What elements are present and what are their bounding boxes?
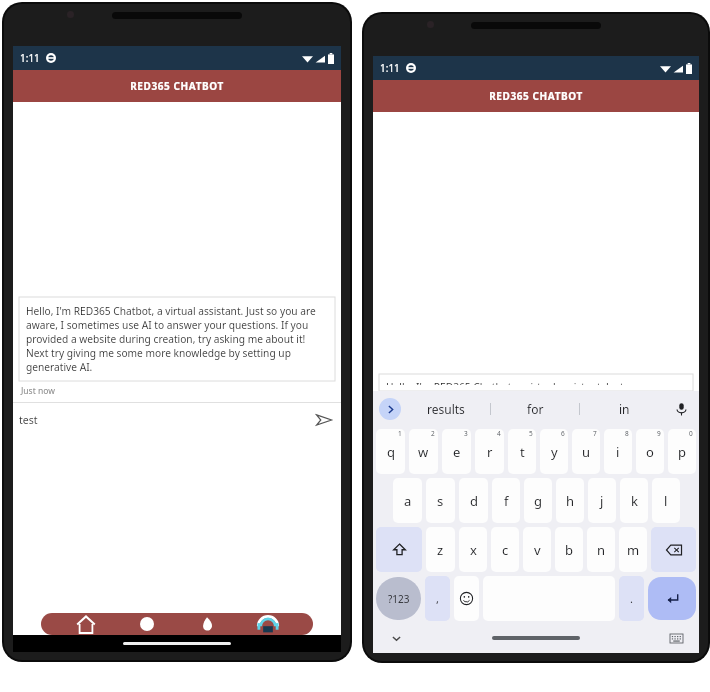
button[interactable]: Change keyboard [667,629,685,647]
button[interactable]: g [524,478,552,523]
staticText: l [664,492,668,510]
staticText: 0 [689,429,693,438]
staticText: o [646,443,654,461]
button[interactable]: n [587,527,615,572]
staticText: Just now [21,385,55,397]
staticText: c [502,541,509,559]
button[interactable]: e [442,429,471,474]
button[interactable]: v [523,527,551,572]
button[interactable]: q [376,429,405,474]
staticText: f [504,492,509,510]
button[interactable]: Hide keyboard [387,629,405,647]
button[interactable]: h [556,478,584,523]
staticText: w [418,443,429,461]
button[interactable]: results [401,391,491,427]
button[interactable]: Emoji [454,576,479,621]
staticText: 9 [657,429,661,438]
staticText: in [619,401,630,417]
staticText: z [437,541,444,559]
button[interactable]: Send [313,409,335,431]
staticText: d [470,492,478,510]
staticText: results [427,401,465,417]
staticText: b [565,541,573,559]
staticText: for [527,401,544,417]
button[interactable]: s [426,478,455,523]
staticText: 7 [593,429,597,438]
staticText: a [404,492,412,510]
staticText: , [436,591,439,606]
staticText: r [487,443,493,461]
button[interactable]: y [540,429,568,474]
button[interactable]: Hello, I'm RED365 Chatbot, a virtual ass… [19,297,335,402]
button[interactable]: Hello, I'm RED365 Chatbot, a virtual ass… [379,374,693,391]
staticText: n [597,541,606,559]
button[interactable]: , [425,576,450,621]
staticText: 1:11 [20,51,40,65]
staticText: m [627,541,640,559]
button[interactable]: j [588,478,616,523]
button[interactable]: Profile [132,613,162,635]
staticText: 5 [529,429,533,438]
button[interactable]: p [668,429,696,474]
button[interactable]: c [491,527,519,572]
button[interactable]: u [572,429,600,474]
staticText: . [630,591,633,606]
button[interactable]: w [409,429,438,474]
button[interactable]: x [459,527,487,572]
button[interactable]: Chatbot [253,613,283,635]
staticText: s [437,492,444,510]
button[interactable]: test [19,403,335,437]
staticText: v [534,541,541,559]
button[interactable]: d [459,478,488,523]
staticText: RED365 CHATBOT [130,79,224,93]
staticText: h [566,492,575,510]
button[interactable]: . [619,576,644,621]
button[interactable]: Notifications [192,613,222,635]
staticText: p [678,443,686,461]
staticText: x [470,541,477,559]
staticText: ?123 [388,592,410,606]
button[interactable]: t [508,429,536,474]
staticText: u [582,443,591,461]
button[interactable]: in [580,391,669,427]
staticText: j [600,492,604,510]
button[interactable]: Enter [648,577,696,620]
button[interactable]: i [604,429,632,474]
staticText: 1:11 [380,61,400,75]
button[interactable]: ?123 [376,577,421,620]
button[interactable]: r [475,429,504,474]
staticText: e [453,443,461,461]
staticText: q [387,443,395,461]
button[interactable]: for [491,391,580,427]
staticText: t [520,443,525,461]
button[interactable]: Home [71,613,101,635]
button[interactable]: m [619,527,647,572]
staticText: y [551,443,558,461]
button[interactable]: z [426,527,455,572]
staticText: g [534,492,542,510]
staticText: Hello, I'm RED365 Chatbot, a virtual ass… [386,380,686,385]
staticText: k [631,492,638,510]
button[interactable]: f [492,478,520,523]
staticText: 4 [497,429,501,438]
button[interactable]: l [652,478,680,523]
staticText: i [616,443,620,461]
staticText: 6 [561,429,565,438]
staticText: 3 [464,429,468,438]
button[interactable]: More suggestions [379,398,401,420]
button[interactable]: a [393,478,422,523]
staticText: RED365 CHATBOT [489,89,583,103]
staticText: 8 [625,429,629,438]
button[interactable]: Voice input [669,397,693,421]
staticText: Hello, I'm RED365 Chatbot, a virtual ass… [26,304,328,374]
button[interactable]: Shift [376,527,422,572]
button[interactable]: k [620,478,648,523]
button[interactable]: o [636,429,664,474]
staticText: 1 [398,429,402,438]
staticText: 2 [431,429,435,438]
button[interactable]: Backspace [651,527,696,572]
staticText: test [19,413,38,427]
button[interactable]: b [555,527,583,572]
